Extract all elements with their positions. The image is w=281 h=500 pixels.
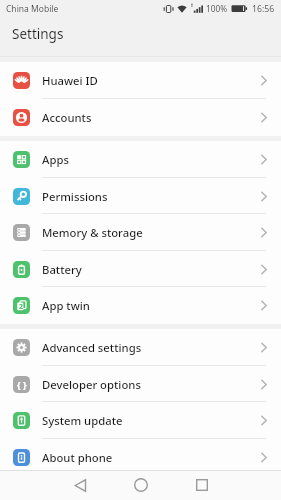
staticText: 16:56 <box>252 3 275 15</box>
button[interactable]: Huawei ID <box>0 62 281 99</box>
staticText: Memory & storage <box>42 225 143 240</box>
button[interactable] <box>121 470 161 500</box>
staticText: App twin <box>42 298 90 313</box>
staticText: System update <box>42 413 123 428</box>
button[interactable]: Apps <box>0 141 281 178</box>
button[interactable]: Memory & storage <box>0 214 281 251</box>
staticText: Settings <box>12 25 64 43</box>
staticText: Accounts <box>42 110 92 125</box>
staticText: Battery <box>42 262 82 277</box>
button[interactable]: Accounts <box>0 99 281 136</box>
staticText: China Mobile <box>6 3 59 15</box>
button[interactable]: Permissions <box>0 178 281 214</box>
staticText: About phone <box>42 450 113 465</box>
button[interactable] <box>60 470 100 500</box>
button[interactable]: Advanced settings <box>0 329 281 366</box>
button[interactable]: 2 <box>0 287 281 324</box>
button[interactable]: { } <box>0 366 281 402</box>
staticText: Apps <box>42 152 69 167</box>
staticText: Permissions <box>42 189 108 204</box>
staticText: Huawei ID <box>42 73 98 88</box>
button[interactable]: About phone <box>0 439 281 475</box>
button[interactable]: System update <box>0 402 281 439</box>
staticText: { } <box>17 378 27 390</box>
staticText: 2 <box>19 302 24 312</box>
staticText: Developer options <box>42 377 141 392</box>
button[interactable]: Battery <box>0 251 281 287</box>
staticText: Advanced settings <box>42 340 142 355</box>
button[interactable] <box>182 470 222 500</box>
staticText: 100% <box>206 3 228 14</box>
